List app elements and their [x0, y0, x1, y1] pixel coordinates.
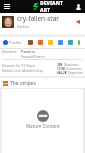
button[interactable]: Gallery tab [58, 40, 63, 45]
button[interactable]: Watch [74, 18, 82, 26]
staticText: Pageviews [68, 71, 83, 75]
button[interactable]: The stripes [3, 78, 85, 88]
button[interactable]: Gallery tab [38, 40, 43, 45]
staticText: Deviant [2, 49, 17, 54]
button[interactable]: Gallery tab [78, 40, 80, 45]
button[interactable]: Gallery tab [48, 40, 53, 45]
button[interactable]: Menu [0, 0, 13, 13]
staticText: Comments [66, 67, 82, 71]
staticText: The stripes [10, 80, 36, 87]
staticText: cry-fallen-star [17, 14, 60, 23]
staticText: 398 [57, 63, 63, 67]
staticText: Pauline [17, 24, 30, 29]
staticText: Female/France [21, 54, 46, 59]
staticText: Profile [9, 40, 22, 45]
staticText: Deviations [64, 63, 79, 67]
staticText: 466.2K [57, 71, 67, 75]
button[interactable]: Account [72, 0, 85, 13]
staticText: Needs Core Membership [2, 68, 43, 73]
staticText: 17.5K [57, 67, 65, 71]
button[interactable]: Gallery tab [28, 40, 33, 45]
staticText: DEVIANT [40, 0, 63, 7]
staticText: Pauline [21, 49, 35, 54]
button[interactable] [2, 16, 14, 28]
button[interactable]: Mature Content [2, 89, 83, 153]
staticText: ART [40, 7, 50, 13]
staticText: Mature Content [26, 123, 60, 129]
button[interactable]: Profile [3, 40, 22, 45]
button[interactable]: Gallery tab [68, 40, 73, 45]
staticText: Deviant for 13 Years [2, 63, 35, 68]
